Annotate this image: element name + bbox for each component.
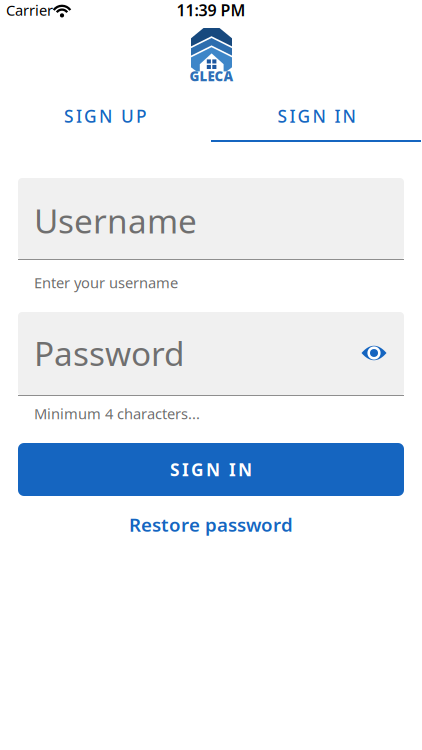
staticText: 11:39 PM bbox=[176, 0, 245, 21]
staticText: Restore password bbox=[129, 512, 293, 537]
staticText: Password bbox=[34, 331, 185, 375]
staticText: GLECA bbox=[189, 67, 233, 85]
staticText: S I G N I N bbox=[277, 104, 355, 127]
staticText: Username bbox=[34, 198, 197, 243]
staticText: Minimum 4 characters... bbox=[34, 404, 200, 423]
staticText: S I G N I N bbox=[170, 458, 252, 481]
staticText: Carrier bbox=[6, 0, 53, 20]
staticText: Enter your username bbox=[34, 273, 178, 292]
staticText: S I G N U P bbox=[64, 104, 147, 127]
